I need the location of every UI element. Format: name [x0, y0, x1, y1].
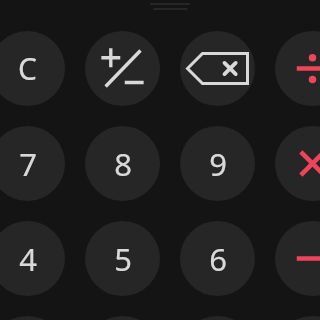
button[interactable]: 5	[85, 221, 160, 296]
staticText: 6	[209, 238, 227, 280]
button[interactable]: Multiply	[275, 126, 320, 201]
staticText: 9	[209, 143, 227, 185]
button[interactable]: Plus	[275, 316, 320, 320]
button[interactable]: 1	[0, 316, 65, 320]
staticText: C	[18, 48, 37, 89]
staticText: 4	[19, 238, 37, 280]
button[interactable]: Backspace	[180, 31, 255, 106]
button[interactable]: Divide	[275, 31, 320, 106]
button[interactable]: C	[0, 31, 65, 106]
button[interactable]: Minus	[275, 221, 320, 296]
button[interactable]: 4	[0, 221, 65, 296]
button[interactable]: 7	[0, 126, 65, 201]
button[interactable]: 6	[180, 221, 255, 296]
button[interactable]: Plus minus sign	[85, 31, 160, 106]
button[interactable]: 9	[180, 126, 255, 201]
button[interactable]: 3	[180, 316, 255, 320]
staticText: 8	[114, 143, 132, 185]
staticText: 7	[19, 143, 37, 185]
staticText: 5	[114, 238, 132, 280]
other: Scroll indicator	[150, 0, 190, 14]
button[interactable]: 8	[85, 126, 160, 201]
button[interactable]: 2	[85, 316, 160, 320]
